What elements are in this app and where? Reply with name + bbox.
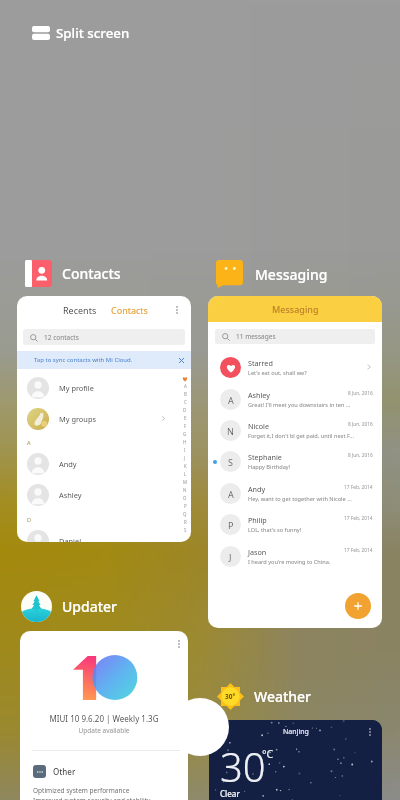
button[interactable]: Messaging — [208, 296, 382, 628]
staticText: A — [228, 394, 234, 406]
staticText: 30° — [225, 692, 236, 701]
staticText: N — [227, 425, 234, 437]
staticText: F — [184, 423, 187, 431]
staticText: E — [184, 415, 187, 423]
staticText: Improved system security and stability — [33, 796, 151, 800]
staticText: D — [183, 407, 187, 415]
button[interactable]: S — [208, 446, 382, 477]
button[interactable]: More options — [20, 631, 188, 800]
staticText: Ashley — [59, 490, 82, 500]
staticText: Jason — [248, 547, 267, 557]
staticText: H — [183, 439, 187, 447]
staticText: Happy Birthday! — [248, 463, 358, 471]
button[interactable]: More options — [172, 637, 186, 651]
staticText: LOL, that's so funny! — [248, 526, 358, 534]
staticText: Update available — [20, 726, 188, 735]
staticText: 17 Feb, 2014 — [344, 547, 373, 554]
staticText: Clear — [220, 788, 240, 799]
staticText: Nanjing — [283, 727, 309, 737]
staticText: S — [184, 527, 187, 535]
staticText: Andy — [248, 484, 266, 494]
staticText: Nicole — [248, 421, 270, 431]
staticText: J — [184, 455, 186, 463]
button[interactable]: J — [208, 541, 382, 572]
staticText: 17 Feb, 2014 — [344, 515, 373, 522]
staticText: M — [183, 479, 187, 487]
button[interactable]: Recents — [63, 304, 97, 316]
button[interactable]: New message — [345, 593, 371, 619]
staticText: 8 Jun, 2016 — [348, 390, 373, 397]
button[interactable]: Starred — [208, 352, 382, 383]
staticText: C — [184, 399, 187, 407]
staticText: I — [184, 447, 186, 455]
staticText: L — [184, 471, 187, 479]
button[interactable]: P — [208, 509, 382, 540]
button[interactable]: N — [208, 415, 382, 446]
staticText: P — [184, 503, 187, 511]
staticText: A — [27, 439, 31, 446]
staticText: B — [184, 391, 187, 399]
staticText: Tap to sync contacts with Mi Cloud. — [34, 356, 133, 364]
staticText: 8 Jun, 2016 — [348, 452, 373, 459]
staticText: Hey, want to get together with Nicole ..… — [248, 495, 358, 503]
staticText: Andy — [59, 459, 77, 469]
button[interactable]: My profile — [17, 372, 191, 403]
button[interactable]: A — [208, 384, 382, 415]
staticText: Messaging — [255, 265, 328, 284]
staticText: Contacts — [62, 264, 121, 283]
staticText: Q — [183, 511, 187, 519]
staticText: My groups — [59, 414, 96, 424]
staticText: P — [228, 519, 234, 531]
staticText: Other — [53, 766, 76, 777]
staticText: Forget it,I don't bl get paid, until nex… — [248, 432, 358, 440]
button[interactable]: My groups — [17, 403, 191, 434]
button[interactable]: Contacts — [111, 304, 148, 316]
staticText: 30 — [220, 739, 266, 793]
staticText: 12 contacts — [44, 333, 79, 342]
staticText: Daniel — [59, 536, 82, 542]
staticText: N — [183, 487, 187, 495]
button[interactable]: Ashley — [17, 479, 191, 510]
staticText: Weather — [254, 687, 312, 706]
button[interactable]: 11 messages — [215, 329, 375, 344]
staticText: R — [184, 519, 187, 527]
button[interactable]: Daniel — [17, 525, 191, 542]
staticText: Great! I'll meet you downstairs in ten .… — [248, 401, 358, 409]
staticText: Starred — [248, 358, 273, 368]
button[interactable]: Tap to sync contacts with Mi Cloud. — [17, 351, 191, 369]
staticText: Split screen — [56, 24, 130, 42]
button[interactable]: Nanjing — [209, 720, 382, 800]
staticText: 17 Feb, 2014 — [344, 484, 373, 491]
button[interactable]: A — [208, 478, 382, 509]
staticText: Stephanie — [248, 452, 282, 462]
staticText: Philip — [248, 515, 267, 525]
button[interactable]: Home — [171, 698, 229, 756]
staticText: S — [228, 456, 233, 468]
button[interactable]: Recents — [17, 296, 191, 542]
staticText: °C — [262, 747, 274, 761]
button[interactable]: Weather options — [363, 725, 377, 739]
button[interactable]: Andy — [17, 448, 191, 479]
staticText: A — [228, 488, 234, 500]
staticText: J — [229, 551, 232, 563]
staticText: Messaging — [272, 303, 319, 315]
staticText: I heard you're moving to China. — [248, 558, 358, 566]
button[interactable]: Split screen — [32, 24, 130, 42]
staticText: Ashley — [248, 390, 270, 400]
staticText: K — [184, 463, 187, 471]
button[interactable]: 12 contacts — [23, 329, 185, 345]
staticText: A — [184, 383, 187, 391]
staticText: My profile — [59, 383, 94, 393]
staticText: G — [183, 431, 187, 439]
staticText: Updater — [62, 597, 118, 616]
staticText: O — [183, 495, 187, 503]
staticText: Optimized system performance — [33, 786, 130, 795]
staticText: 11 messages — [236, 332, 276, 341]
staticText: D — [27, 516, 32, 523]
staticText: 8 Jun, 2016 — [348, 421, 373, 428]
staticText: Let's eat out, shall we? — [248, 369, 358, 377]
staticText: MIUI 10 9.6.20 | Weekly 1.3G — [20, 713, 188, 724]
button[interactable]: More options — [170, 303, 184, 317]
